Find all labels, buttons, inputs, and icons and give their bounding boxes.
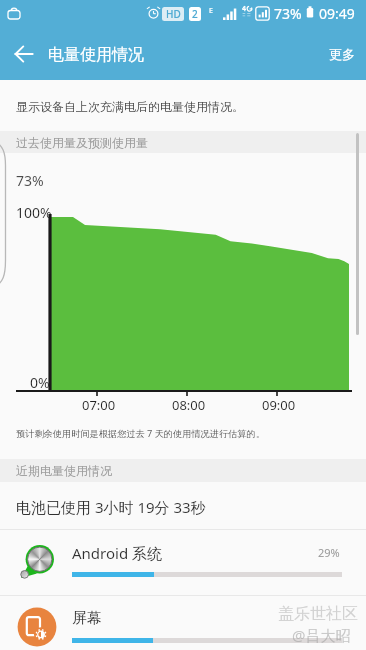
button[interactable]: 更多 bbox=[318, 32, 366, 76]
staticText: 73% bbox=[274, 4, 302, 23]
staticText: 09:00 bbox=[262, 396, 296, 414]
staticText: Android 系统 bbox=[72, 543, 163, 563]
staticText: 更多 bbox=[329, 46, 355, 62]
staticText: 电量使用情况 bbox=[48, 45, 144, 65]
staticText: 07:00 bbox=[82, 396, 116, 414]
staticText: 屏幕 bbox=[72, 609, 102, 628]
staticText: 电池已使用 3小时 19分 33秒 bbox=[16, 497, 206, 517]
staticText: 100% bbox=[16, 203, 52, 222]
staticText: 0% bbox=[30, 373, 50, 392]
staticText: 29% bbox=[318, 545, 340, 560]
staticText: E bbox=[209, 6, 213, 16]
staticText: @吕大昭 bbox=[292, 625, 351, 645]
staticText: 09:49 bbox=[319, 4, 355, 23]
staticText: 近期电量使用情况 bbox=[16, 463, 112, 478]
staticText: 08:00 bbox=[172, 396, 206, 414]
staticText: 预计剩余使用时间是根据您过去 7 天的使用情况进行估算的。 bbox=[16, 427, 265, 440]
button[interactable]: 屏幕 bbox=[0, 596, 366, 650]
button[interactable]: Android 系统 bbox=[0, 530, 366, 596]
staticText: 过去使用量及预测使用量 bbox=[16, 135, 148, 150]
staticText: HD bbox=[166, 7, 181, 21]
staticText: 显示设备自上次充满电后的电量使用情况。 bbox=[16, 99, 244, 114]
staticText: 2 bbox=[192, 7, 198, 21]
staticText: 73% bbox=[16, 171, 44, 190]
staticText: 盖乐世社区 bbox=[278, 604, 358, 624]
button[interactable]: Back bbox=[2, 32, 46, 76]
